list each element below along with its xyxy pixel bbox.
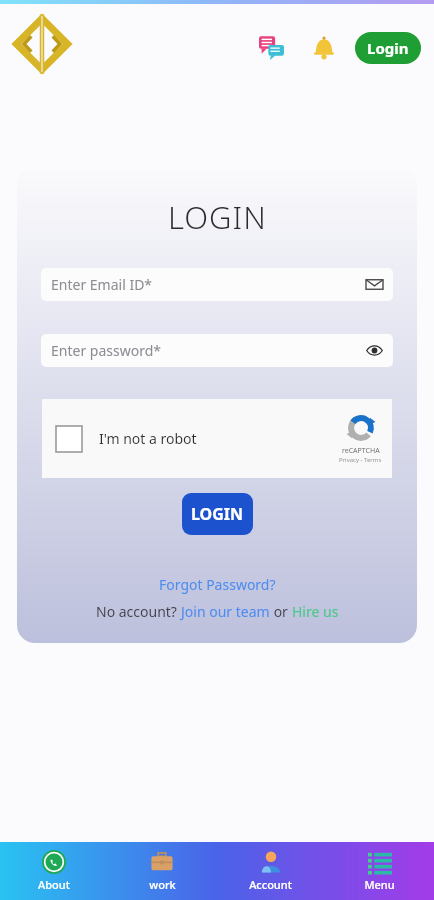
staticText: Menu (364, 877, 395, 892)
button[interactable]: Enter Email ID* (41, 268, 393, 301)
staticText: Join our team (181, 602, 270, 621)
button[interactable]: Menu (325, 842, 434, 900)
button[interactable]: Account (216, 842, 325, 900)
staticText: LOGIN (168, 196, 267, 238)
button[interactable]: Login (355, 32, 421, 64)
staticText: Enter Email ID* (51, 275, 366, 294)
button[interactable]: I'm not a robot (42, 399, 392, 478)
staticText: No account? (96, 602, 181, 621)
button[interactable]: About (0, 842, 108, 900)
staticText: Hire us (292, 602, 339, 621)
button[interactable]: Hire us (292, 602, 339, 621)
button[interactable]: Join our team (181, 602, 270, 621)
button[interactable]: Forgot Password? (153, 573, 282, 596)
staticText: Account (249, 877, 292, 892)
staticText: work (149, 877, 176, 892)
button[interactable]: Enter password* (41, 334, 393, 367)
button[interactable]: LOGIN (182, 493, 253, 535)
button[interactable]: Messages (255, 31, 289, 65)
staticText: Privacy - Terms (339, 456, 382, 464)
button[interactable]: work (108, 842, 216, 900)
button[interactable]: Notifications (307, 31, 341, 65)
staticText: Enter password* (51, 341, 366, 360)
staticText: reCAPTCHA (342, 446, 380, 456)
staticText: LOGIN (191, 503, 244, 525)
staticText: Forgot Password? (159, 575, 276, 594)
button[interactable]: Logo (10, 12, 74, 76)
staticText: Login (367, 38, 409, 58)
staticText: About (38, 877, 70, 892)
staticText: I'm not a robot (99, 429, 197, 448)
staticText: or (270, 602, 292, 621)
